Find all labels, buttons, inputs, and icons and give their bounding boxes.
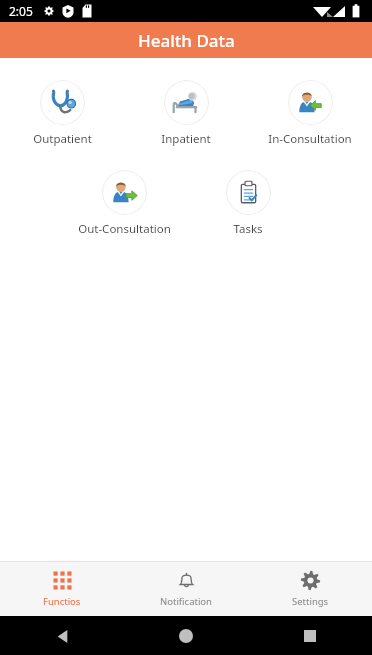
staticText: 2:05: [9, 3, 33, 19]
staticText: Inpatient: [161, 131, 211, 147]
staticText: Functios: [43, 595, 81, 608]
button[interactable]: Home: [169, 619, 203, 653]
staticText: Out-Consultation: [78, 221, 171, 237]
staticText: Notification: [160, 595, 212, 608]
button[interactable]: Tasks: [186, 170, 310, 237]
button[interactable]: Functios: [0, 562, 124, 616]
staticText: Settings: [292, 595, 329, 608]
button[interactable]: Recent apps: [293, 619, 327, 653]
button[interactable]: In-Consultation: [248, 80, 372, 147]
button[interactable]: Back: [45, 619, 79, 653]
staticText: Outpatient: [33, 131, 92, 147]
button[interactable]: Inpatient: [124, 80, 248, 147]
button[interactable]: Settings: [248, 562, 372, 616]
button[interactable]: Out-Consultation: [62, 170, 186, 237]
staticText: In-Consultation: [268, 131, 352, 147]
button[interactable]: Outpatient: [0, 80, 124, 147]
staticText: Tasks: [233, 221, 263, 237]
button[interactable]: Notification: [124, 562, 248, 616]
staticText: Health Data: [138, 29, 235, 52]
